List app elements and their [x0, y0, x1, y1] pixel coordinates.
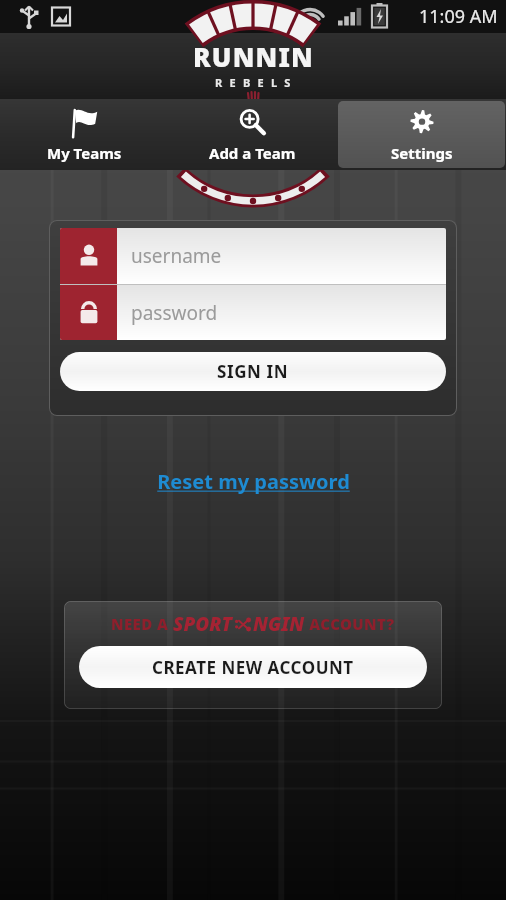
- button[interactable]: password: [60, 285, 446, 340]
- staticText: SPORT: [173, 611, 233, 637]
- button[interactable]: Reset my password: [149, 464, 358, 499]
- staticText: R E B E L S: [215, 75, 293, 90]
- staticText: ACCOUNT?: [305, 614, 395, 634]
- staticText: Settings: [391, 143, 453, 163]
- button[interactable]: My Teams: [1, 101, 167, 168]
- staticText: SIGN IN: [217, 360, 289, 383]
- staticText: NEED A: [111, 614, 173, 634]
- button[interactable]: CREATE NEW ACCOUNT: [79, 646, 427, 688]
- button[interactable]: username: [60, 228, 446, 284]
- button[interactable]: Add a Team: [169, 101, 336, 168]
- staticText: Reset my password: [157, 468, 350, 495]
- staticText: CREATE NEW ACCOUNT: [152, 656, 354, 679]
- staticText: username: [131, 243, 222, 269]
- staticText: RUNNIN: [193, 39, 314, 74]
- staticText: My Teams: [47, 143, 122, 163]
- staticText: password: [131, 300, 218, 326]
- button[interactable]: SIGN IN: [60, 352, 446, 391]
- button[interactable]: Settings: [338, 101, 505, 168]
- staticText: NGIN: [253, 611, 305, 637]
- staticText: Add a Team: [209, 143, 296, 163]
- staticText: 11:09 AM: [419, 4, 498, 29]
